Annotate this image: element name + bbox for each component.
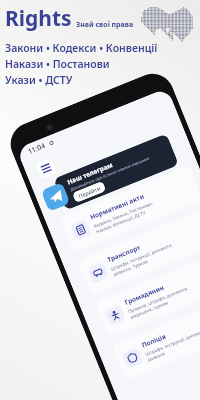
button[interactable]: Нормативні акти <box>60 165 200 252</box>
staticText: Нормативні акти <box>89 191 146 222</box>
staticText: Правила, штрафи, допомога, медицина, тур… <box>127 285 191 320</box>
button[interactable]: Поліція <box>112 293 200 380</box>
staticText: Rights <box>5 4 72 33</box>
button[interactable]: Громадянин <box>94 250 200 338</box>
staticText: Знай свої права <box>76 20 134 30</box>
staticText: Транспорт <box>106 243 142 264</box>
staticText: Перейти <box>77 184 102 199</box>
staticText: Штрафи, інструкції, допомога, дозволи <box>144 326 200 362</box>
button[interactable]: Menu <box>35 157 57 179</box>
staticText: Кодекси, Закони, Постанови, Накази, Конв… <box>93 199 156 235</box>
staticText: Дізнавайтеся про останні новини першими <box>70 156 150 192</box>
staticText: Наш телеграм <box>66 160 115 187</box>
staticText: Поліція <box>140 331 168 349</box>
staticText: Штрафи, інструкції, допомога, дозволи, Т… <box>110 241 176 277</box>
button[interactable]: Перейти <box>72 181 106 203</box>
staticText: 11:04 <box>26 141 47 157</box>
staticText: Закони • Кодекси • Конвенції Накази • По… <box>5 41 158 87</box>
staticText: Громадянин <box>123 283 165 307</box>
button[interactable]: Наш телеграм <box>53 133 179 210</box>
button[interactable]: Транспорт <box>77 208 200 295</box>
